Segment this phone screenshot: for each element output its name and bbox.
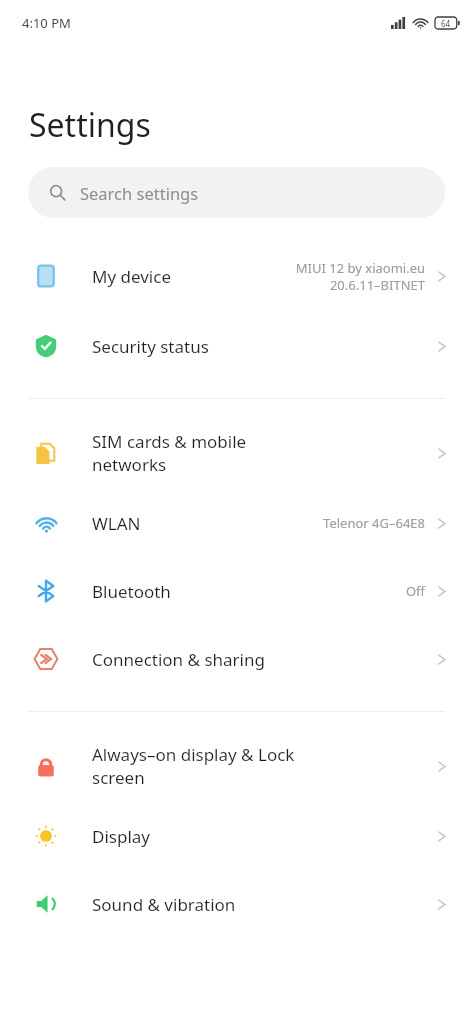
other: Signal strength	[391, 17, 406, 29]
staticText: Settings	[29, 103, 151, 147]
button[interactable]: My device	[0, 240, 473, 312]
staticText: Bluetooth	[92, 580, 171, 603]
button[interactable]: Sound & vibration	[0, 870, 473, 938]
button[interactable]: Security status	[0, 312, 473, 380]
staticText: 4:10 PM	[22, 14, 71, 32]
staticText: Telenor 4G–64E8	[323, 514, 425, 532]
staticText: Security status	[92, 335, 209, 358]
staticText: MIUI 12 by xiaomi.eu 20.6.11–BITNET	[295, 259, 425, 294]
staticText: Display	[92, 825, 150, 848]
other: Wi-Fi	[413, 17, 428, 29]
staticText: My device	[92, 265, 171, 288]
staticText: SIM cards & mobile networks	[92, 430, 247, 476]
staticText: 64	[441, 18, 451, 29]
button[interactable]: Search settings	[28, 167, 445, 218]
button[interactable]: WLAN	[0, 489, 473, 557]
button[interactable]: SIM cards & mobile networks	[0, 417, 473, 489]
staticText: Off	[405, 582, 425, 600]
other: Battery 64 percent	[435, 17, 460, 29]
button[interactable]: Display	[0, 802, 473, 870]
staticText: Search settings	[80, 182, 199, 204]
button[interactable]: Connection & sharing	[0, 625, 473, 693]
staticText: Connection & sharing	[92, 648, 265, 671]
staticText: Sound & vibration	[92, 893, 236, 916]
staticText: WLAN	[92, 512, 141, 535]
button[interactable]: Bluetooth	[0, 557, 473, 625]
staticText: Always–on display & Lock screen	[92, 743, 295, 789]
button[interactable]: Always–on display & Lock screen	[0, 730, 473, 802]
